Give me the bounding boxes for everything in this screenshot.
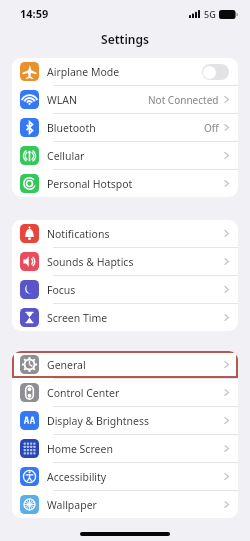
staticText: Control Center: [47, 386, 120, 400]
staticText: Settings: [101, 31, 149, 47]
staticText: Personal Hotspot: [47, 177, 133, 191]
button[interactable]: Screen Time: [12, 304, 238, 331]
button[interactable]: Airplane Mode: [12, 58, 238, 85]
staticText: Off: [204, 121, 219, 135]
staticText: Accessibility: [47, 470, 107, 484]
button[interactable]: Home Screen: [12, 435, 238, 462]
button[interactable]: Notifications: [12, 220, 238, 247]
button[interactable]: Focus: [12, 276, 238, 303]
button[interactable]: Cellular: [12, 142, 238, 169]
button[interactable]: Bluetooth: [12, 114, 238, 141]
staticText: Home Screen: [47, 442, 113, 456]
staticText: 14:59: [20, 6, 49, 21]
staticText: Sounds & Haptics: [47, 255, 134, 269]
button[interactable]: Personal Hotspot: [12, 170, 238, 197]
button[interactable]: General: [12, 351, 238, 378]
button[interactable]: Airplane Mode toggle, off: [202, 64, 229, 80]
staticText: WLAN: [47, 93, 77, 107]
staticText: Wallpaper: [47, 498, 97, 512]
staticText: Airplane Mode: [47, 65, 120, 79]
button[interactable]: Sounds & Haptics: [12, 248, 238, 275]
staticText: Focus: [47, 283, 76, 297]
staticText: 5G: [204, 8, 216, 20]
staticText: General: [47, 358, 86, 372]
staticText: Not Connected: [148, 93, 219, 107]
button[interactable]: Control Center: [12, 379, 238, 406]
button[interactable]: Wallpaper: [12, 491, 238, 518]
button[interactable]: Display & Brightness: [12, 407, 238, 434]
staticText: Notifications: [47, 227, 110, 241]
button[interactable]: WLAN: [12, 86, 238, 113]
button[interactable]: Accessibility: [12, 463, 238, 490]
staticText: Bluetooth: [47, 121, 96, 135]
staticText: Screen Time: [47, 311, 108, 325]
staticText: Cellular: [47, 149, 85, 163]
staticText: Display & Brightness: [47, 414, 150, 428]
